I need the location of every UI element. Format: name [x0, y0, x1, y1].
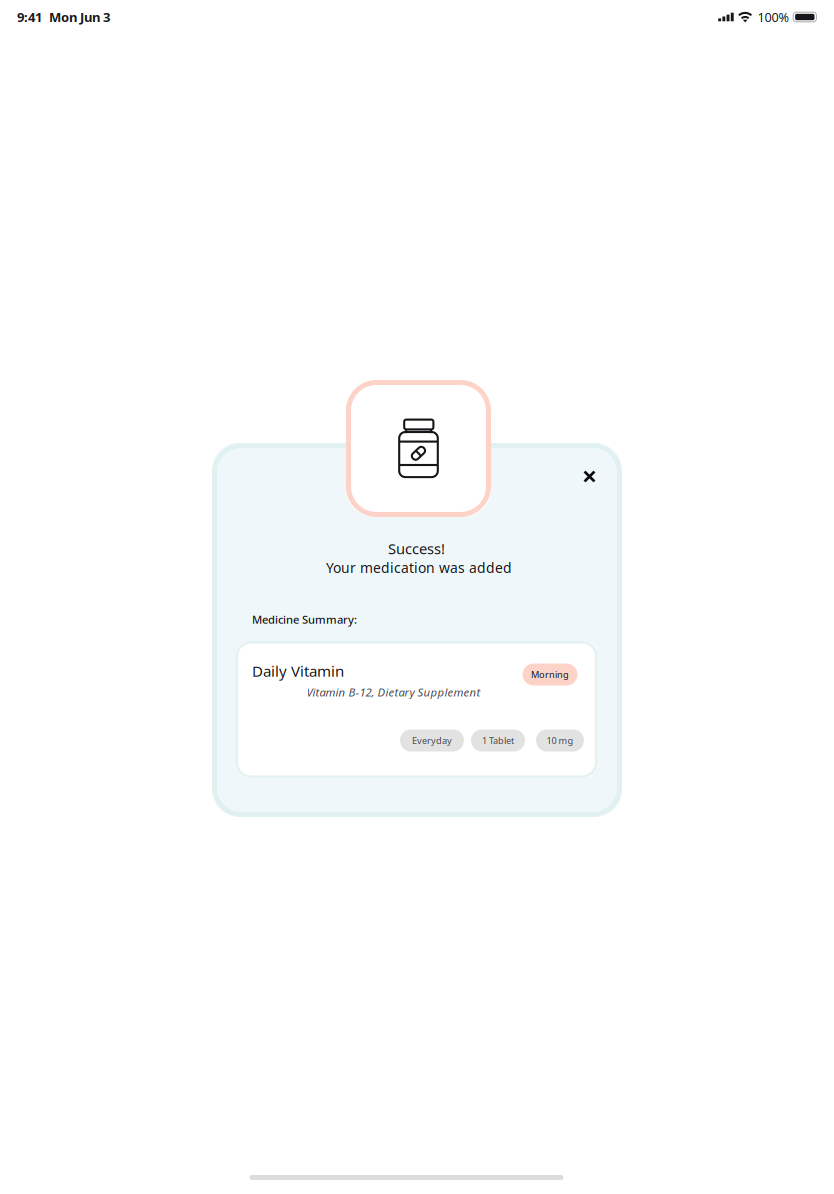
staticText: Daily Vitamin	[252, 661, 344, 681]
staticText: Success!	[388, 538, 445, 558]
staticText: Medicine Summary:	[252, 612, 357, 627]
button[interactable]: Close	[572, 459, 606, 493]
staticText: Your medication was added	[326, 558, 512, 577]
staticText: Vitamin B-12, Dietary Supplement	[306, 684, 480, 700]
staticText: Morning	[531, 668, 569, 681]
staticText: 100%	[758, 8, 790, 26]
staticText: 10 mg	[546, 734, 573, 747]
staticText: 9:41	[17, 8, 42, 26]
staticText: Everyday	[412, 734, 452, 747]
staticText: Mon Jun 3	[49, 8, 110, 26]
staticText: 1 Tablet	[482, 734, 514, 747]
